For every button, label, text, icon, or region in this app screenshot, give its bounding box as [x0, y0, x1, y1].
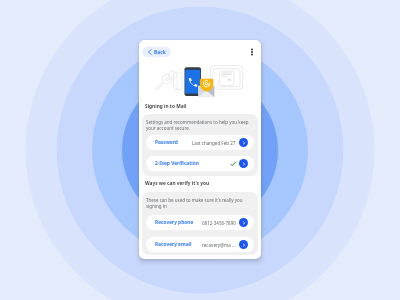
button[interactable]: More options — [247, 45, 257, 55]
staticText: Last changed Feb 27 — [192, 140, 236, 146]
staticText: 2-Step Verification — [155, 160, 199, 167]
button[interactable]: 2-Step Verification — [146, 156, 254, 171]
button[interactable]: Back — [142, 47, 171, 57]
staticText: Recovery email — [155, 241, 192, 248]
staticText: Back — [154, 49, 166, 56]
staticText: recovery@ma ... — [202, 242, 236, 248]
staticText: These can be used to make sure it's real… — [146, 197, 250, 209]
staticText: 0812-3456-7890 — [202, 220, 236, 226]
button[interactable]: Recovery phone — [146, 215, 254, 230]
staticText: Password — [155, 139, 178, 146]
staticText: Settings and recommendations to help you… — [146, 119, 250, 131]
button[interactable]: Password — [146, 135, 254, 150]
staticText: Recovery phone — [155, 219, 194, 226]
staticText: Signing in to Mail — [145, 103, 187, 110]
staticText: Ways we can verify it's you — [145, 180, 210, 187]
button[interactable]: Recovery email — [146, 237, 254, 252]
